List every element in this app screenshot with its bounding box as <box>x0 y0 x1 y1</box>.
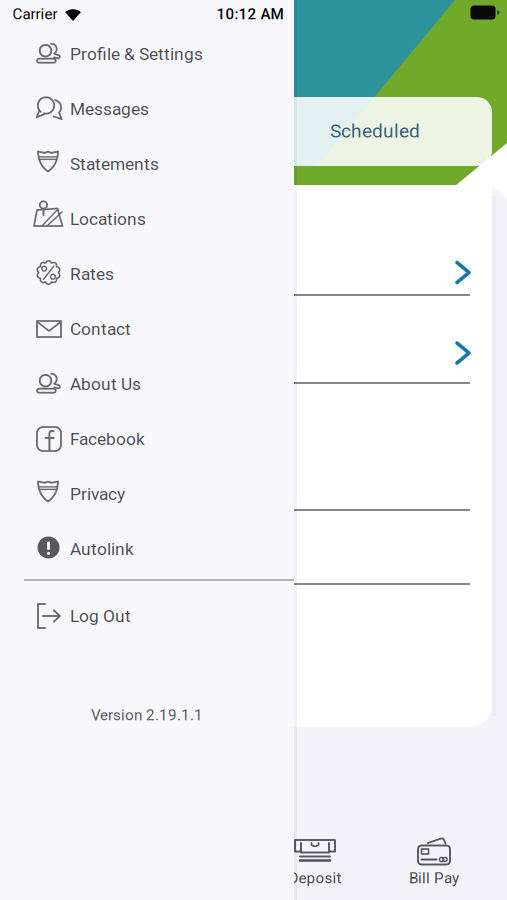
staticText: Statements <box>70 154 159 174</box>
staticText: Autolink <box>70 539 134 559</box>
staticText: Log Out <box>70 606 131 626</box>
button[interactable]: Autolink <box>0 521 294 576</box>
staticText: Messages <box>70 99 149 119</box>
button[interactable]: Profile & Settings <box>0 26 294 81</box>
staticText: About Us <box>70 374 141 394</box>
button[interactable]: Deposit <box>260 828 370 892</box>
button[interactable]: Contact <box>0 301 294 356</box>
button[interactable]: Log Out <box>0 588 294 643</box>
button[interactable]: About Us <box>0 356 294 411</box>
staticText: Deposit <box>288 869 341 887</box>
staticText: Carrier <box>12 5 57 23</box>
staticText: Rates <box>70 264 114 284</box>
button[interactable]: Scheduled <box>16 97 492 166</box>
staticText: Profile & Settings <box>70 44 203 64</box>
staticText: Bill Pay <box>409 869 459 887</box>
staticText: Locations <box>70 209 146 229</box>
button[interactable]: Statements <box>0 136 294 191</box>
button[interactable]: Rates <box>0 246 294 301</box>
button[interactable]: Bill Pay <box>379 828 489 892</box>
staticText: Contact <box>70 319 131 339</box>
button[interactable]: Locations <box>0 191 294 246</box>
staticText: Privacy <box>70 484 125 504</box>
button[interactable]: From account <box>15 185 492 295</box>
staticText: Scheduled <box>330 120 420 142</box>
staticText: 10:12 AM <box>216 5 283 23</box>
button[interactable]: To account <box>15 295 492 383</box>
staticText: Facebook <box>70 429 145 449</box>
staticText: Version 2.19.1.1 <box>91 706 203 724</box>
button[interactable]: Facebook <box>0 411 294 466</box>
button[interactable]: Privacy <box>0 466 294 521</box>
button[interactable]: Messages <box>0 81 294 136</box>
